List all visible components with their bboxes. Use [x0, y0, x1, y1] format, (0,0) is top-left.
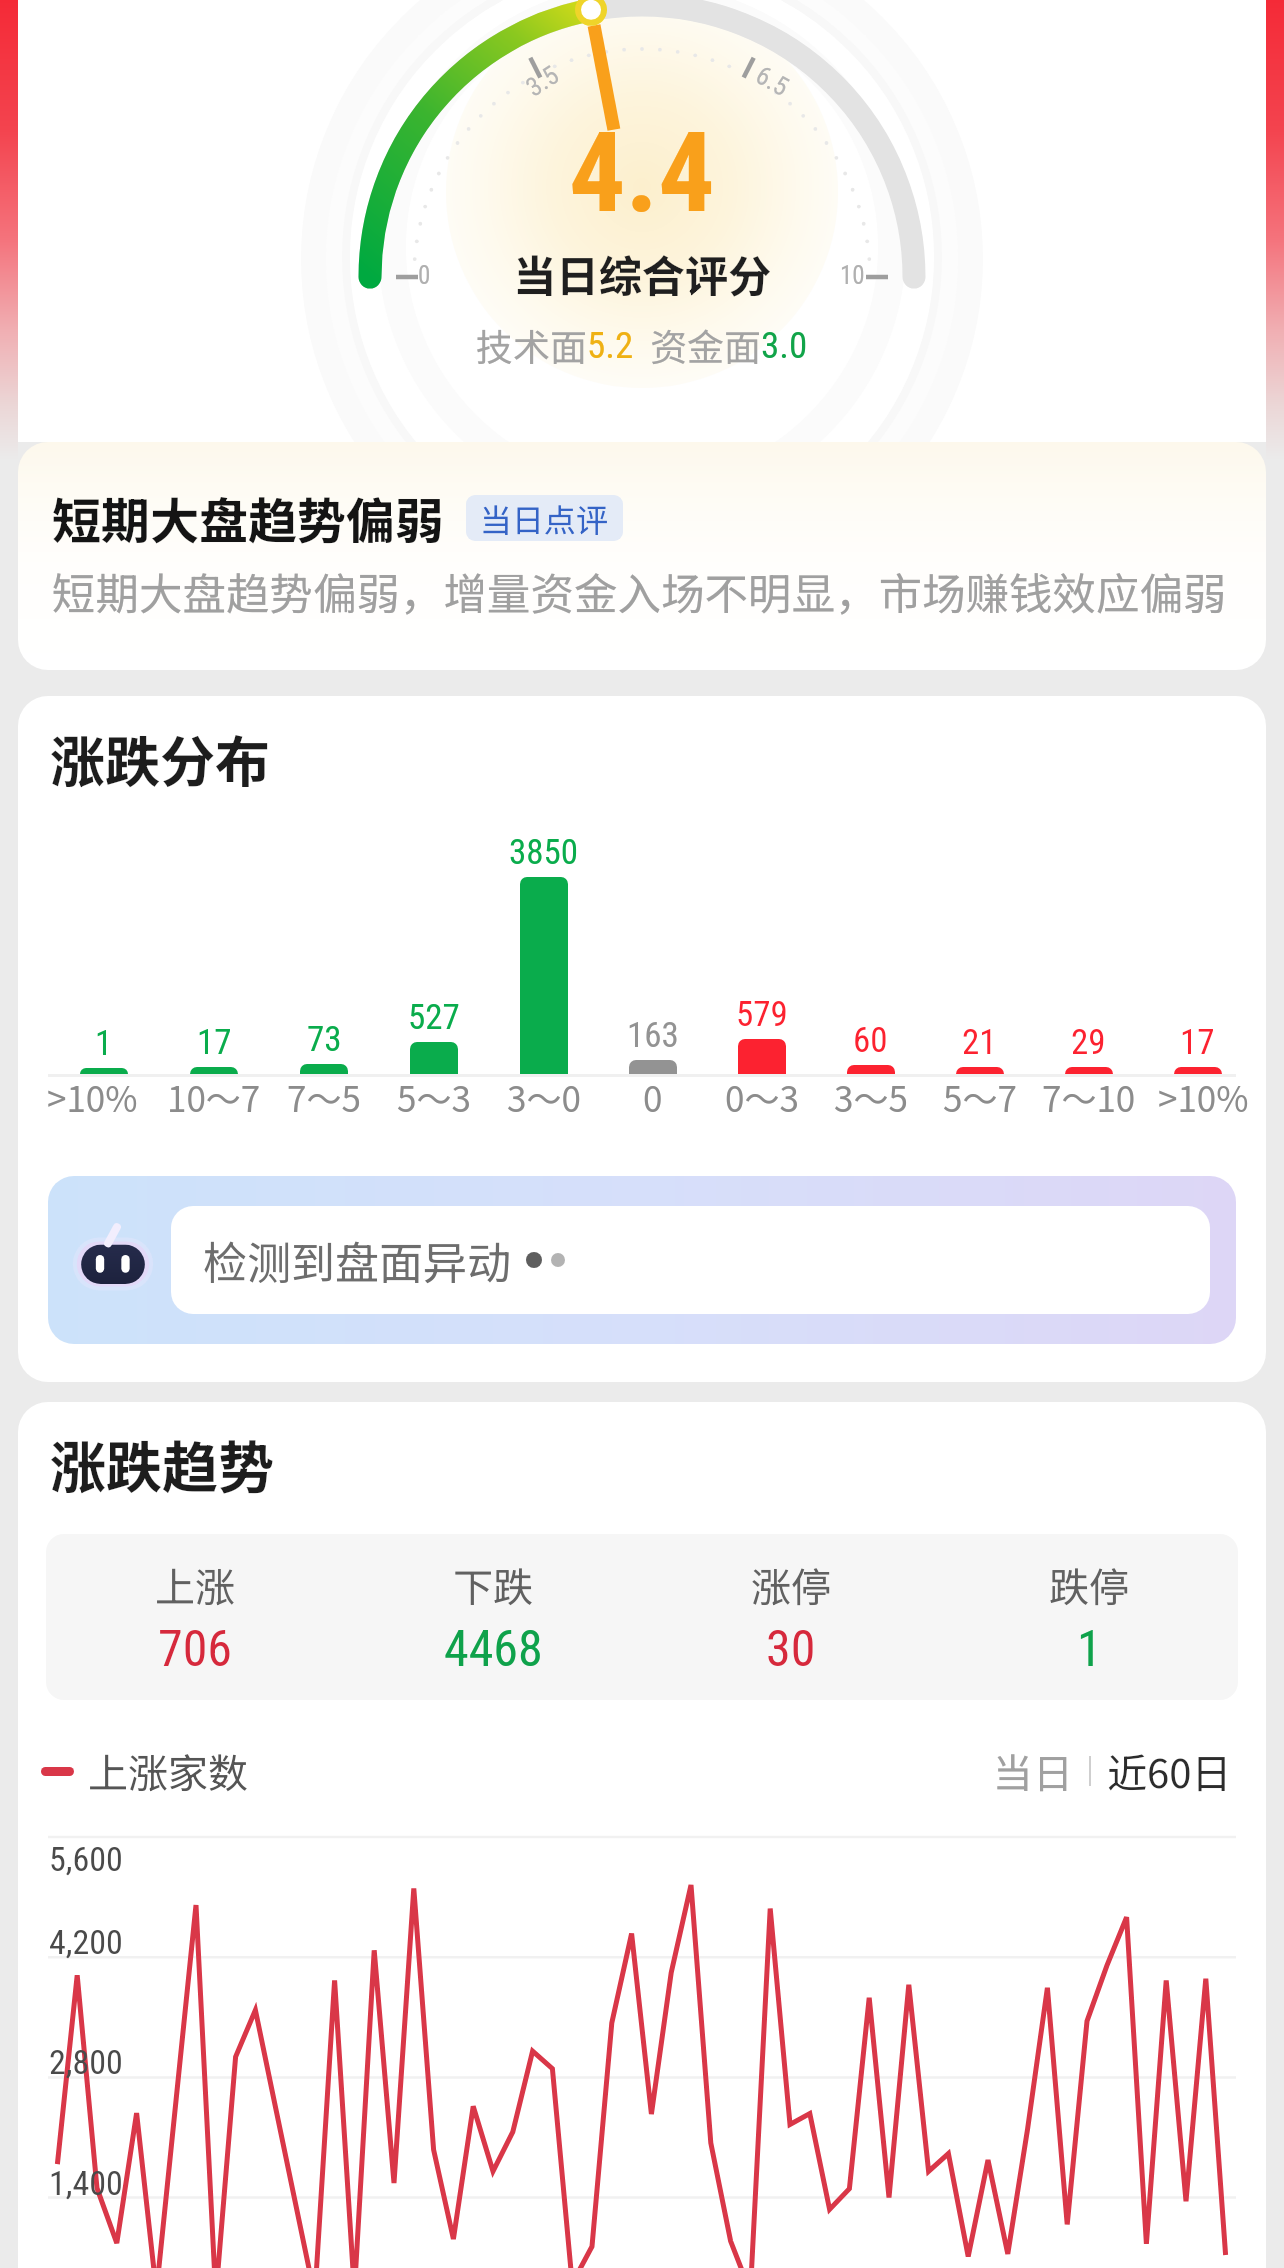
staticText: 近60日	[1107, 1742, 1232, 1800]
staticText: 163	[627, 1015, 679, 1056]
staticText: >10%	[1158, 1071, 1249, 1122]
staticText: 4468	[444, 1620, 543, 1679]
staticText: 涨跌趋势	[50, 1423, 274, 1504]
staticText: 1	[1077, 1620, 1102, 1679]
staticText: 6.5	[751, 60, 794, 102]
staticText: 3850	[509, 832, 579, 873]
staticText: 资金面	[650, 318, 761, 372]
staticText: 2,800	[49, 2042, 123, 2082]
staticText: 30	[766, 1620, 816, 1679]
button[interactable]: 短期大盘趋势偏弱	[18, 442, 1266, 670]
staticText: 17	[197, 1022, 232, 1063]
staticText: 短期大盘趋势偏弱，增量资金入场不明显，市场赚钱效应偏弱	[52, 560, 1227, 623]
staticText: 涨停	[751, 1556, 831, 1614]
staticText: 0～3	[725, 1071, 799, 1122]
staticText: 技术面	[476, 318, 587, 372]
staticText: 5.2	[587, 324, 634, 367]
staticText: 4,200	[49, 1922, 123, 1962]
staticText: 7～5	[287, 1071, 361, 1122]
staticText: 跌停	[1049, 1556, 1129, 1614]
staticText: 7～10	[1042, 1071, 1136, 1122]
staticText: 当日综合评分	[513, 242, 771, 304]
staticText: 上涨	[155, 1556, 235, 1614]
staticText: 5,600	[49, 1839, 123, 1879]
staticText: 0	[418, 261, 431, 290]
staticText: 73	[307, 1019, 342, 1060]
staticText: 10	[840, 261, 865, 290]
staticText: 5～7	[943, 1071, 1017, 1122]
staticText: 3.0	[761, 324, 808, 367]
staticText: 706	[158, 1620, 233, 1679]
other: AI assistant	[64, 1211, 162, 1309]
staticText: 上涨家数	[88, 1742, 248, 1800]
staticText: 短期大盘趋势偏弱	[52, 482, 445, 553]
staticText: 1	[95, 1023, 113, 1064]
staticText: 17	[1180, 1022, 1215, 1063]
staticText: 29	[1071, 1022, 1106, 1063]
staticText: 10～7	[167, 1071, 261, 1122]
staticText: 下跌	[453, 1556, 533, 1614]
staticText: 60	[853, 1020, 888, 1061]
button[interactable]: 当日	[989, 1742, 1077, 1800]
staticText: 3.5	[520, 59, 564, 102]
staticText: 1,400	[49, 2163, 123, 2203]
staticText: 检测到盘面异动	[203, 1228, 511, 1292]
staticText: 当日点评	[480, 495, 609, 541]
staticText: 涨跌分布	[50, 718, 271, 798]
staticText: 4.4	[569, 107, 715, 238]
staticText: 5～3	[397, 1071, 471, 1122]
staticText: 527	[408, 997, 460, 1038]
staticText: 21	[962, 1022, 997, 1063]
staticText: 0	[643, 1071, 663, 1122]
staticText: 当日	[993, 1742, 1073, 1800]
button[interactable]: 近60日	[1103, 1742, 1236, 1800]
button[interactable]: AI assistant	[48, 1176, 1236, 1344]
staticText: 3～5	[834, 1071, 908, 1122]
staticText: 3～0	[507, 1071, 581, 1122]
staticText: 579	[736, 994, 788, 1035]
staticText: >10%	[47, 1071, 138, 1122]
